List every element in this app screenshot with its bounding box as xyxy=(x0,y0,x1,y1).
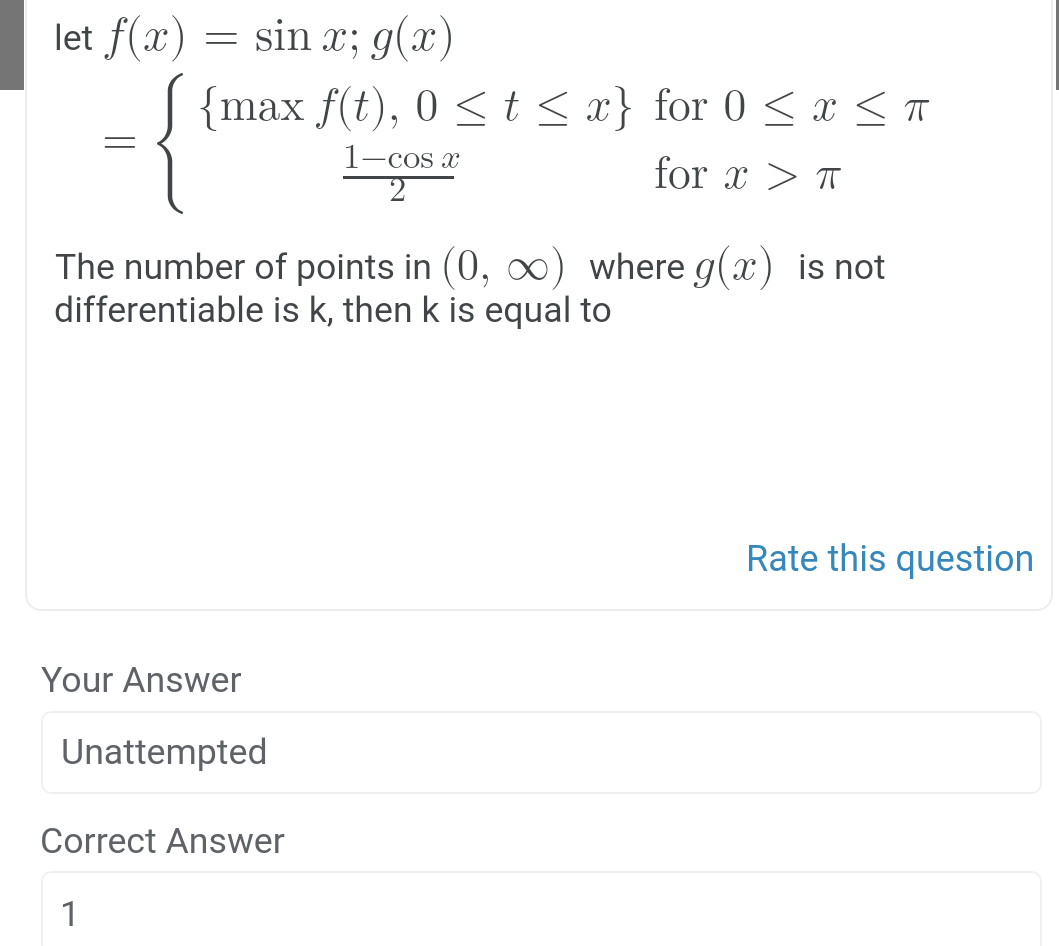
staticText: Your Answer xyxy=(41,659,242,701)
staticText: Unattempted xyxy=(61,731,268,773)
staticText: {max 𝑓(𝑡), 0 ≤ 𝑡 ≤ 𝑥} xyxy=(197,83,635,129)
staticText: = xyxy=(102,117,138,163)
staticText: for 0 ≤ 𝑥 ≤ 𝜋 xyxy=(654,83,930,129)
staticText: is not xyxy=(798,246,886,288)
staticText: 1 xyxy=(60,893,81,935)
staticText: Correct Answer xyxy=(40,820,285,862)
staticText: for 𝑥 > 𝜋 xyxy=(654,151,842,197)
button[interactable] xyxy=(41,871,1042,946)
staticText: differentiable is k, then k is equal to xyxy=(54,289,612,331)
staticText: where xyxy=(589,246,686,288)
staticText: Rate this question xyxy=(746,538,1035,580)
button[interactable] xyxy=(734,528,1034,586)
staticText: 2 xyxy=(389,173,407,208)
staticText: 1−cos 𝑥 xyxy=(343,140,461,175)
staticText: let xyxy=(54,17,94,59)
staticText: 𝑓(𝑥) = sin 𝑥; 𝑔(𝑥) xyxy=(102,12,456,59)
staticText: 𝑔(𝑥) xyxy=(693,243,776,288)
staticText: (0, ∞) xyxy=(440,244,568,288)
button[interactable] xyxy=(41,711,1042,794)
staticText: The number of points in xyxy=(55,246,433,288)
